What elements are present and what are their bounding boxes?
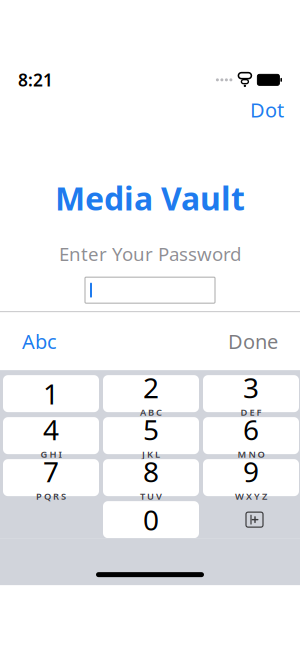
staticText: 9 [243,453,259,490]
button[interactable]: 1 [3,375,99,412]
button[interactable]: Dot [244,91,290,129]
staticText: Media Vault [55,177,245,219]
button[interactable]: 6 [203,417,299,454]
staticText: 3 [243,369,259,406]
staticText: 1 [43,375,59,412]
staticText: Abc [22,328,57,354]
staticText: M N O [237,448,264,460]
staticText: D E F [240,406,261,418]
button[interactable]: 9 [203,459,299,496]
button[interactable]: 8 [103,459,199,496]
staticText: 8:21 [18,68,53,91]
staticText: 7 [43,453,59,490]
button[interactable]: Abc [14,320,65,362]
staticText: P Q R S [36,490,66,502]
staticText: A B C [140,406,162,418]
staticText: Done [228,328,278,354]
staticText: 0 [143,501,159,538]
button[interactable]: Delete [203,501,299,538]
staticText: 5 [143,411,159,448]
staticText: 8 [143,453,159,490]
staticText: 4 [43,411,59,448]
button[interactable]: 0 [103,501,199,538]
staticText: T U V [140,490,162,502]
button[interactable]: 5 [103,417,199,454]
staticText: 2 [143,369,159,406]
staticText: J K L [142,448,160,460]
button[interactable]: 3 [203,375,299,412]
staticText: Enter Your Password [59,241,241,266]
button[interactable]: 4 [3,417,99,454]
button[interactable]: 7 [3,459,99,496]
button[interactable]: 2 [103,375,199,412]
staticText: 6 [243,411,259,448]
staticText: W X Y Z [235,490,267,502]
staticText: Dot [250,97,284,123]
button[interactable]: Done [220,320,286,362]
staticText: G H I [40,448,61,460]
